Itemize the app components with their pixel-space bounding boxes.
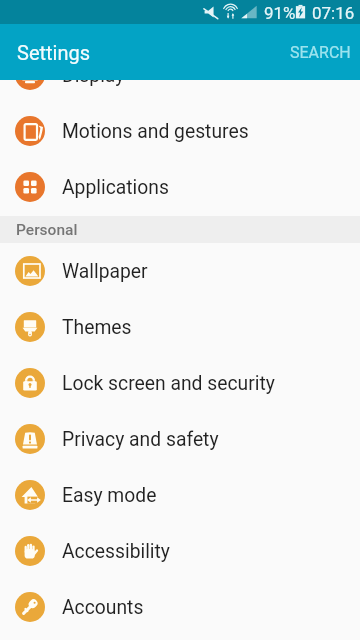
staticText: Accounts	[62, 596, 144, 619]
button[interactable]: Lock screen and security	[0, 355, 360, 411]
staticText: Personal	[16, 221, 78, 239]
button[interactable]: Easy mode	[0, 467, 360, 523]
button[interactable]: Wallpaper	[0, 243, 360, 299]
button[interactable]: Motions and gestures	[0, 103, 360, 159]
staticText: Easy mode	[62, 484, 157, 507]
staticText: Wallpaper	[62, 260, 148, 283]
staticText: SEARCH	[290, 43, 351, 62]
staticText: Display	[62, 64, 125, 87]
button[interactable]: Display	[0, 47, 360, 103]
staticText: Settings	[17, 41, 91, 64]
button[interactable]: SEARCH	[274, 27, 360, 78]
staticText: Applications	[62, 176, 169, 199]
staticText: Lock screen and security	[62, 372, 275, 395]
button[interactable]: Accessibility	[0, 523, 360, 579]
staticText: Privacy and safety	[62, 428, 219, 451]
staticText: 91%	[264, 3, 296, 23]
button[interactable]: Privacy and safety	[0, 411, 360, 467]
button[interactable]: Themes	[0, 299, 360, 355]
staticText: Accessibility	[62, 540, 170, 563]
button[interactable]: Applications	[0, 159, 360, 215]
staticText: Themes	[62, 316, 132, 339]
button[interactable]: Accounts	[0, 579, 360, 635]
staticText: Motions and gestures	[62, 120, 249, 143]
staticText: 07:16	[312, 3, 355, 23]
